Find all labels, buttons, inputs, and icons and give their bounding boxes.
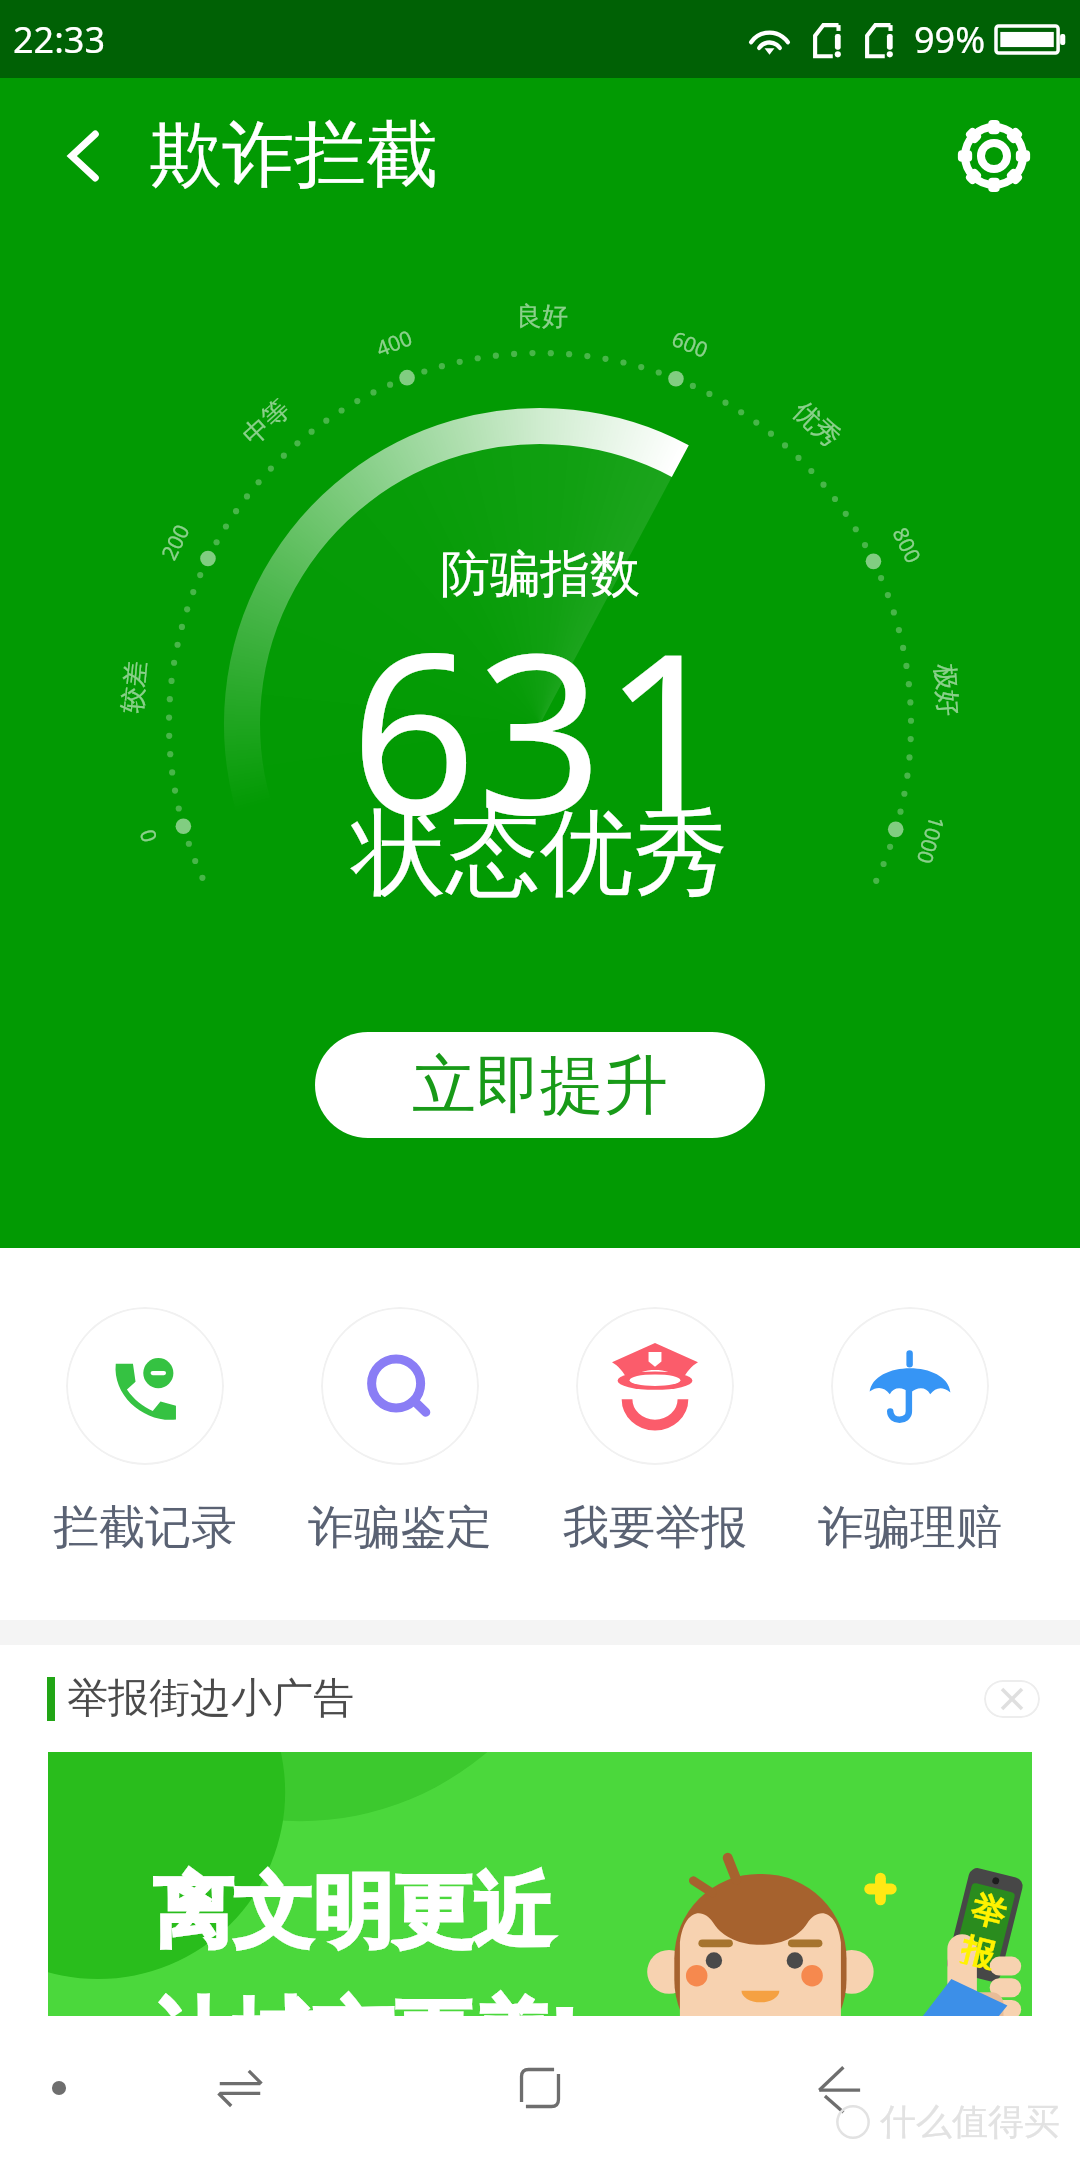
staticText: 200 — [154, 519, 197, 565]
staticText: 离文明更近 — [153, 1862, 553, 1963]
staticText: 举报街边小广告 — [67, 1673, 354, 1725]
staticText: 22:33 — [13, 15, 106, 64]
staticText: 0 — [133, 825, 164, 846]
staticText: 99% — [914, 15, 986, 64]
staticText: 拦截记录 — [53, 1499, 237, 1557]
staticText: 诈骗理赔 — [818, 1499, 1002, 1557]
button[interactable]: Recents — [490, 2016, 590, 2160]
staticText: 举 — [966, 1887, 1010, 1937]
button[interactable]: 我要举报 — [527, 1307, 782, 1557]
staticText: 800 — [886, 523, 928, 569]
staticText: 中等 — [236, 393, 297, 452]
button[interactable]: 立即提升 — [315, 1032, 765, 1138]
staticText: 立即提升 — [412, 1045, 668, 1126]
staticText: 600 — [668, 324, 713, 365]
button[interactable]: Menu — [9, 2016, 109, 2160]
staticText: 状态优秀 — [352, 794, 728, 912]
button[interactable]: Switch — [190, 2016, 290, 2160]
staticText: 欺诈拦截 — [150, 110, 438, 201]
staticText: 报 — [958, 1929, 1000, 1971]
staticText: 631 — [350, 578, 730, 879]
staticText: 我要举报 — [563, 1499, 747, 1557]
button[interactable]: 诈骗理赔 — [782, 1307, 1037, 1557]
button[interactable]: Settings — [946, 108, 1042, 204]
staticText: 让城市更美! — [153, 1978, 577, 2016]
staticText: 诈骗鉴定 — [308, 1499, 492, 1557]
staticText: 防骗指数 — [440, 543, 640, 606]
staticText: 什么值得买 — [880, 2099, 1060, 2144]
button[interactable]: Back — [38, 111, 128, 201]
staticText: 良好 — [516, 300, 568, 333]
staticText: 1000 — [909, 813, 951, 868]
button[interactable]: Close — [984, 1680, 1040, 1718]
staticText: 极好 — [928, 663, 965, 717]
staticText: 400 — [372, 323, 417, 363]
staticText: 优秀 — [786, 395, 847, 454]
staticText: 较差 — [116, 660, 153, 714]
button[interactable]: Back — [789, 2016, 889, 2160]
button[interactable]: 离文明更近 — [48, 1752, 1032, 2016]
button[interactable]: 诈骗鉴定 — [272, 1307, 527, 1557]
button[interactable]: 拦截记录 — [17, 1307, 272, 1557]
